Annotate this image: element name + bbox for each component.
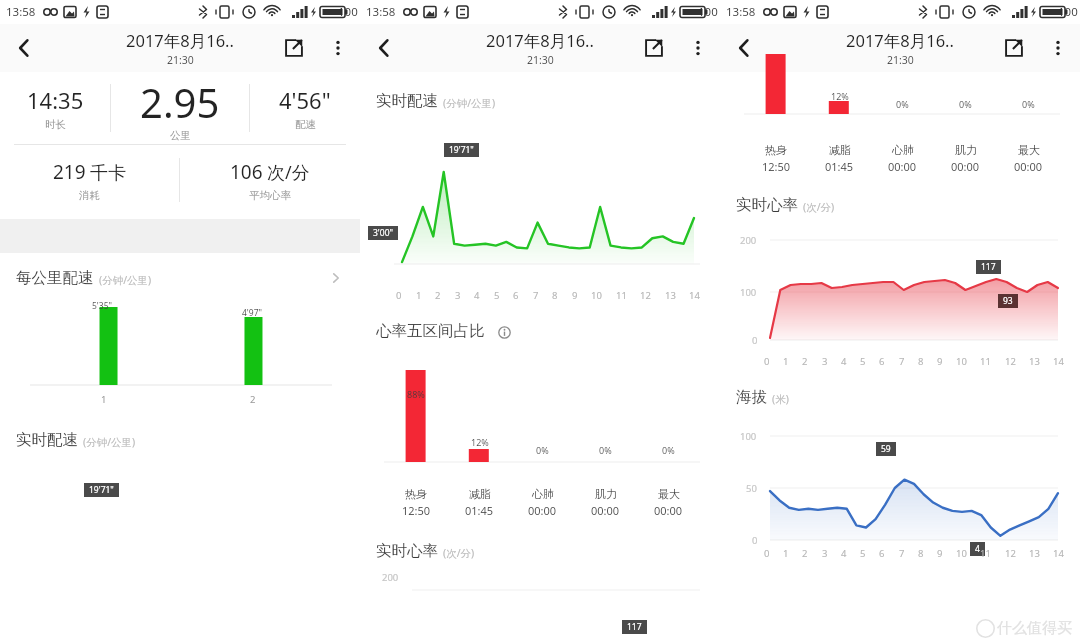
staticText: 5'35": [92, 300, 112, 312]
staticText: 2: [802, 547, 808, 560]
staticText: 1: [416, 289, 422, 302]
staticText: 肌力: [955, 143, 977, 157]
staticText: 实时配速: [16, 430, 78, 450]
staticText: 3: [822, 355, 828, 368]
staticText: 12%: [831, 90, 849, 102]
staticText: 0%: [896, 98, 909, 110]
staticText: 12:50: [762, 159, 791, 174]
staticText: 00:00: [591, 503, 620, 518]
staticText: 12: [640, 289, 651, 302]
staticText: 4: [975, 543, 980, 555]
staticText: 4: [841, 547, 847, 560]
staticText: 8: [918, 547, 924, 560]
button[interactable]: 心率五区间占比: [376, 314, 704, 348]
staticText: 2.95: [140, 75, 220, 129]
button[interactable]: Back: [360, 24, 408, 72]
staticText: 10: [956, 355, 967, 368]
staticText: 01:45: [825, 159, 854, 174]
staticText: 减脂: [829, 143, 851, 157]
staticText: 10: [591, 289, 602, 302]
staticText: 117: [627, 621, 642, 633]
staticText: 时长: [45, 118, 66, 131]
button[interactable]: Share: [992, 26, 1036, 70]
staticText: 100: [740, 286, 757, 299]
button[interactable]: Share: [632, 26, 676, 70]
button[interactable]: 实时心率: [376, 534, 704, 568]
staticText: 0: [764, 355, 770, 368]
staticText: 14: [1053, 355, 1064, 368]
staticText: 93: [1003, 295, 1013, 307]
staticText: 10: [956, 547, 967, 560]
staticText: 9: [937, 547, 943, 560]
staticText: 7: [899, 355, 905, 368]
staticText: (次/分): [443, 546, 475, 560]
staticText: 2: [435, 289, 441, 302]
staticText: 1: [783, 355, 789, 368]
staticText: 实时配速: [376, 91, 438, 111]
staticText: 12: [1005, 547, 1016, 560]
staticText: 200: [740, 234, 757, 247]
staticText: (分钟/公里): [83, 435, 136, 449]
button[interactable]: More options: [1036, 26, 1080, 70]
staticText: 21:30: [887, 53, 914, 67]
staticText: 热身: [405, 487, 427, 501]
staticText: (次/分): [803, 200, 835, 214]
staticText: 00:00: [654, 503, 683, 518]
button[interactable]: 每公里配速: [16, 261, 344, 295]
staticText: 106: [230, 159, 263, 185]
staticText: 5: [860, 355, 866, 368]
staticText: 200: [382, 571, 399, 584]
staticText: 21:30: [167, 53, 194, 67]
staticText: 7: [533, 289, 539, 302]
staticText: 肌力: [595, 487, 617, 501]
staticText: 1: [101, 393, 107, 406]
staticText: 13:58: [6, 4, 36, 20]
staticText: 2017年8月16..: [126, 29, 234, 52]
staticText: 什么值得买: [997, 619, 1072, 638]
staticText: 00:00: [888, 159, 917, 174]
staticText: (分钟/公里): [99, 273, 152, 287]
staticText: 11: [980, 355, 991, 368]
staticText: 每公里配速: [16, 268, 94, 288]
staticText: 0%: [662, 444, 675, 456]
staticText: 13:58: [726, 4, 756, 20]
staticText: 14:35: [27, 85, 84, 115]
staticText: 13: [1029, 355, 1040, 368]
staticText: 01:45: [465, 503, 494, 518]
staticText: 0: [752, 534, 758, 547]
staticText: 0: [764, 547, 770, 560]
staticText: 3: [822, 547, 828, 560]
staticText: 100: [1058, 4, 1078, 20]
staticText: 13: [665, 289, 676, 302]
staticText: 2017年8月16..: [846, 29, 954, 52]
staticText: 59: [881, 443, 891, 455]
staticText: 2: [250, 393, 256, 406]
staticText: 4'97": [242, 307, 262, 319]
staticText: 0%: [959, 98, 972, 110]
button[interactable]: More options: [676, 26, 720, 70]
button[interactable]: 实时心率: [736, 188, 1064, 222]
staticText: 公里: [170, 129, 191, 142]
button[interactable]: Back: [720, 24, 768, 72]
staticText: 00:00: [528, 503, 557, 518]
button[interactable]: Share: [272, 26, 316, 70]
staticText: 最大: [1018, 143, 1040, 157]
button[interactable]: 实时配速: [16, 423, 344, 457]
staticText: 海拔: [736, 387, 767, 407]
staticText: 00:00: [1014, 159, 1043, 174]
staticText: 12: [1005, 355, 1016, 368]
button[interactable]: 实时配速: [376, 84, 704, 118]
staticText: 88%: [407, 388, 425, 400]
staticText: 0%: [1022, 98, 1035, 110]
staticText: 117: [981, 261, 996, 273]
button[interactable]: 海拔: [736, 380, 1064, 414]
staticText: 5: [860, 547, 866, 560]
staticText: 100: [698, 4, 718, 20]
staticText: 12%: [471, 436, 489, 448]
staticText: 14: [1053, 547, 1064, 560]
staticText: 2017年8月16..: [486, 29, 594, 52]
button[interactable]: More options: [316, 26, 360, 70]
button[interactable]: Back: [0, 24, 48, 72]
staticText: 热身: [765, 143, 787, 157]
staticText: 0: [396, 289, 402, 302]
